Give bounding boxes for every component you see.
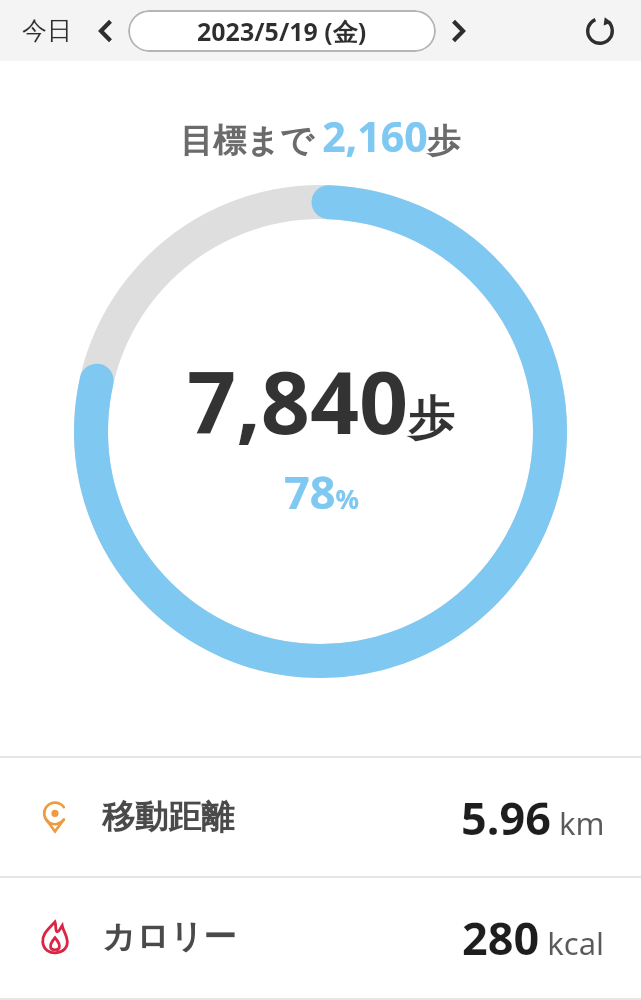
button[interactable]: カロリー xyxy=(0,878,641,996)
staticText: 2023/5/19 (金) xyxy=(197,14,367,48)
button[interactable]: Next day xyxy=(436,9,480,53)
staticText: 今日 xyxy=(22,15,72,46)
staticText: 目標まで 2,160歩 xyxy=(180,108,461,164)
staticText: 7,840歩 xyxy=(187,342,455,459)
staticText: 280 kcal xyxy=(462,907,605,968)
staticText: 移動距離 xyxy=(102,796,234,838)
button[interactable]: 2023/5/19 (金) xyxy=(128,10,436,52)
button[interactable]: 移動距離 xyxy=(0,758,641,876)
button[interactable]: 今日 xyxy=(10,7,84,54)
staticText: カロリー xyxy=(102,916,237,958)
button[interactable]: Refresh xyxy=(575,6,625,56)
staticText: 78% xyxy=(284,461,359,522)
button[interactable]: Previous day xyxy=(84,9,128,53)
staticText: 5.96 km xyxy=(461,787,605,848)
